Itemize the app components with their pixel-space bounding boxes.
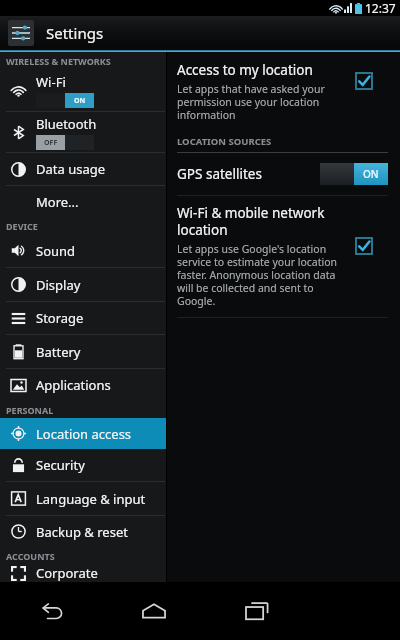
- button[interactable]: Sound: [0, 234, 167, 267]
- button[interactable]: Back: [0, 582, 102, 640]
- staticText: Data usage: [36, 160, 106, 178]
- staticText: DEVICE: [6, 220, 38, 232]
- staticText: PERSONAL: [6, 404, 54, 416]
- button[interactable]: Toggle checkbox: [356, 238, 372, 254]
- button[interactable]: GPS satellites: [167, 153, 400, 195]
- button[interactable]: Location access: [0, 418, 167, 449]
- button[interactable]: Wi-Fi: [0, 69, 167, 111]
- staticText: ON: [363, 167, 379, 181]
- staticText: ACCOUNTS: [6, 550, 55, 562]
- button[interactable]: Display: [0, 268, 167, 301]
- staticText: Bluetooth: [36, 115, 97, 133]
- staticText: Language & input: [36, 490, 146, 508]
- button[interactable]: Backup & reset: [0, 516, 167, 547]
- staticText: Storage: [36, 309, 84, 327]
- button[interactable]: Language & input: [0, 482, 167, 515]
- staticText: Access to my location: [177, 61, 313, 79]
- staticText: Location access: [36, 425, 132, 443]
- button[interactable]: Applications: [0, 369, 167, 401]
- staticText: Security: [36, 456, 85, 474]
- staticText: Backup & reset: [36, 523, 128, 541]
- button[interactable]: Wi-Fi & mobile network location: [167, 196, 400, 317]
- button[interactable]: Data usage: [0, 153, 167, 185]
- staticText: OFF: [44, 138, 58, 148]
- staticText: More...: [36, 193, 79, 211]
- staticText: Wi-Fi: [36, 73, 66, 91]
- button[interactable]: Toggle checkbox: [356, 73, 372, 89]
- staticText: WIRELESS & NETWORKS: [6, 55, 111, 67]
- button[interactable]: Access to my location: [167, 52, 400, 130]
- button[interactable]: More...: [0, 186, 167, 217]
- button[interactable]: Security: [0, 449, 167, 481]
- button[interactable]: Bluetooth: [0, 112, 167, 152]
- staticText: 12:37: [365, 0, 396, 16]
- staticText: Sound: [36, 242, 76, 260]
- staticText: Applications: [36, 376, 111, 394]
- button[interactable]: Corporate: [0, 564, 167, 582]
- staticText: Let apps use Google's location service t…: [177, 242, 338, 308]
- staticText: Battery: [36, 343, 81, 361]
- button[interactable]: Storage: [0, 302, 167, 334]
- staticText: LOCATION SOURCES: [177, 135, 272, 148]
- staticText: Corporate: [36, 564, 98, 582]
- button[interactable]: GPS satellites switch: [320, 163, 388, 185]
- button[interactable]: OFF: [36, 135, 94, 150]
- staticText: GPS satellites: [177, 165, 320, 183]
- button[interactable]: ON: [36, 93, 94, 108]
- staticText: Wi-Fi & mobile network location: [177, 204, 325, 239]
- staticText: ON: [74, 96, 86, 106]
- button[interactable]: Battery: [0, 335, 167, 368]
- staticText: Display: [36, 276, 81, 294]
- button[interactable]: Recent apps: [205, 582, 308, 640]
- staticText: Settings: [46, 23, 104, 43]
- button[interactable]: Home: [102, 582, 205, 640]
- staticText: Let apps that have asked your permission…: [177, 82, 325, 122]
